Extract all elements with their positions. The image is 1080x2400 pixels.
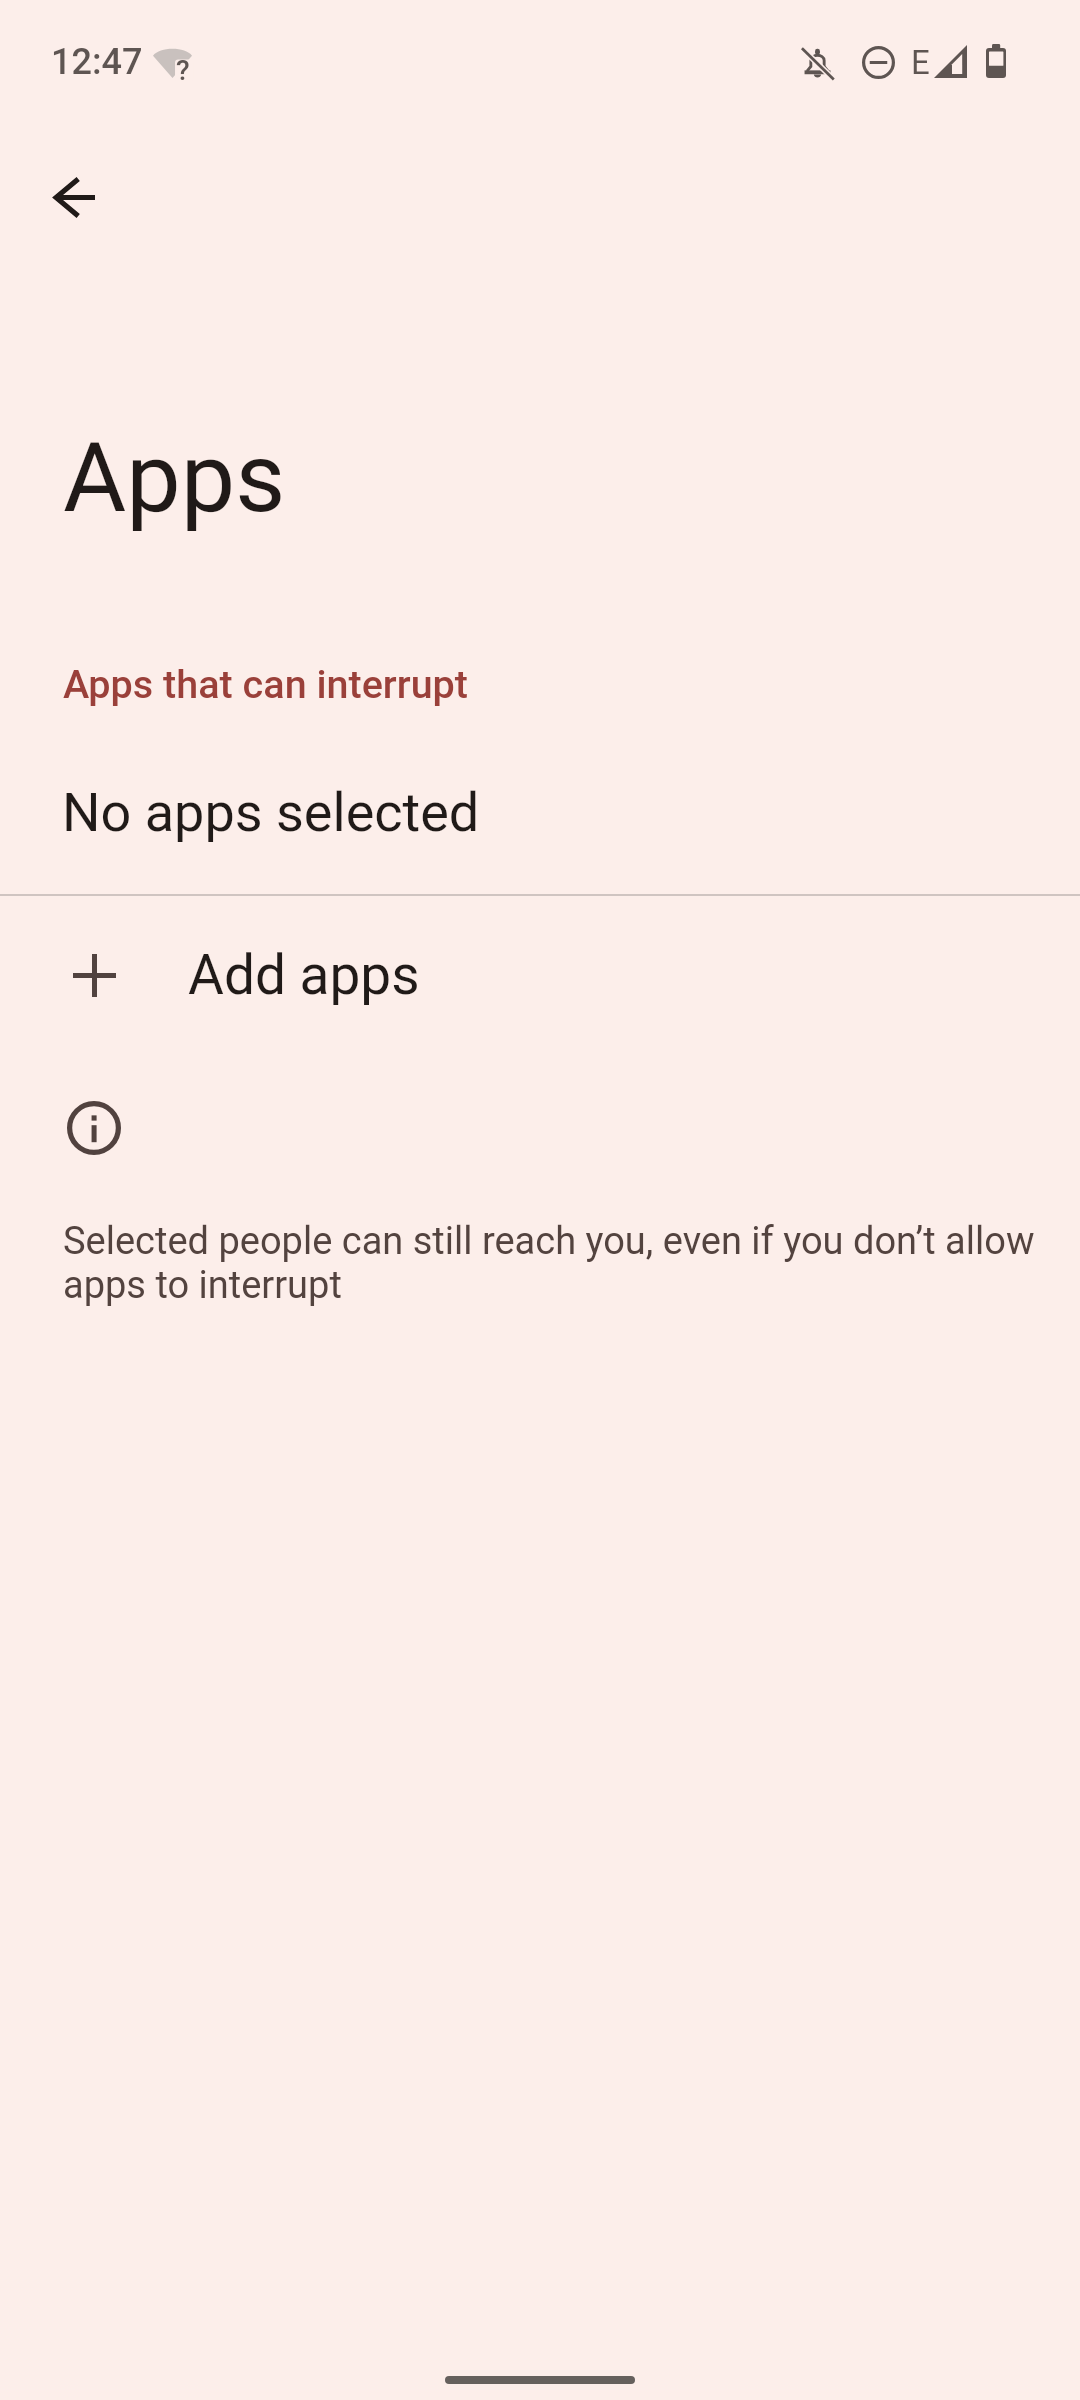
other: Do Not Disturb on [862,46,895,79]
other: Battery [986,44,1006,78]
staticText: Add apps [188,943,420,1007]
staticText: ? [176,53,190,87]
staticText: No apps selected [62,780,480,844]
staticText: E [911,44,930,82]
staticText: Selected people can still reach you, eve… [63,1219,1058,1307]
button[interactable]: Add apps [0,896,1080,1054]
other: Information [67,1101,121,1155]
other: Wi-Fi, no internet [153,47,192,78]
other: Notifications silenced [800,45,835,80]
staticText: Apps that can interrupt [63,662,468,708]
staticText: Apps [63,422,286,534]
staticText: 12:47 [51,42,143,83]
button[interactable]: Navigate up [32,155,116,239]
other: Mobile signal [934,45,967,78]
